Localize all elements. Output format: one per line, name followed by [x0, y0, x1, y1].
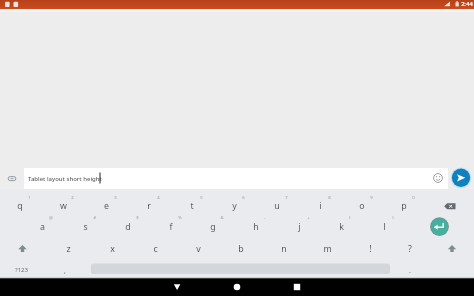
staticText: , — [64, 266, 66, 276]
button[interactable] — [430, 217, 450, 237]
staticText: p — [401, 200, 407, 212]
staticText: v — [196, 243, 201, 255]
staticText: s — [83, 221, 88, 233]
button[interactable] — [24, 168, 448, 189]
staticText: ) — [392, 215, 394, 221]
staticText: f — [169, 221, 173, 233]
staticText: 9 — [370, 195, 373, 201]
staticText: o — [359, 200, 365, 212]
staticText: 4 — [157, 195, 160, 201]
staticText: c — [153, 243, 158, 255]
staticText: g — [210, 221, 216, 233]
staticText: . — [409, 266, 411, 276]
staticText: 3 — [114, 195, 117, 201]
staticText: & — [220, 215, 224, 221]
staticText: 6 — [242, 195, 245, 201]
button[interactable] — [285, 279, 309, 296]
staticText: 8 — [328, 195, 331, 201]
staticText: 0 — [412, 195, 415, 201]
button[interactable] — [90, 262, 390, 275]
staticText: i — [319, 200, 322, 212]
staticText: n — [281, 243, 287, 255]
staticText: q — [17, 200, 23, 212]
staticText: % — [178, 215, 182, 221]
staticText: u — [274, 200, 280, 212]
staticText: m — [323, 243, 332, 255]
staticText: z — [66, 243, 71, 255]
staticText: 7 — [285, 195, 288, 201]
staticText: d — [125, 221, 131, 233]
staticText: t — [190, 200, 194, 212]
staticText: Tablet layout short height — [28, 175, 102, 183]
staticText: ? — [408, 243, 412, 255]
staticText: w — [60, 200, 67, 212]
staticText: x — [110, 243, 115, 255]
staticText: + — [307, 215, 310, 221]
staticText: - — [264, 215, 266, 221]
button[interactable] — [225, 279, 249, 296]
staticText: ?123 — [15, 266, 28, 274]
button[interactable] — [165, 279, 189, 296]
staticText: ! — [369, 243, 372, 255]
staticText: k — [339, 221, 344, 233]
staticText: l — [383, 221, 386, 233]
staticText: 5 — [200, 195, 203, 201]
staticText: j — [298, 221, 301, 233]
staticText: 2:44 — [461, 0, 473, 8]
staticText: r — [147, 200, 151, 212]
staticText: h — [253, 221, 259, 233]
button[interactable] — [450, 167, 472, 189]
staticText: b — [238, 243, 244, 255]
staticText: a — [40, 221, 45, 233]
staticText: ( — [349, 215, 351, 221]
staticText: $ — [136, 215, 139, 221]
staticText: y — [232, 200, 237, 212]
staticText: e — [104, 200, 109, 212]
staticText: 1 — [28, 195, 31, 201]
staticText: 2 — [71, 195, 74, 201]
staticText: # — [93, 215, 96, 221]
staticText: @ — [49, 215, 53, 221]
